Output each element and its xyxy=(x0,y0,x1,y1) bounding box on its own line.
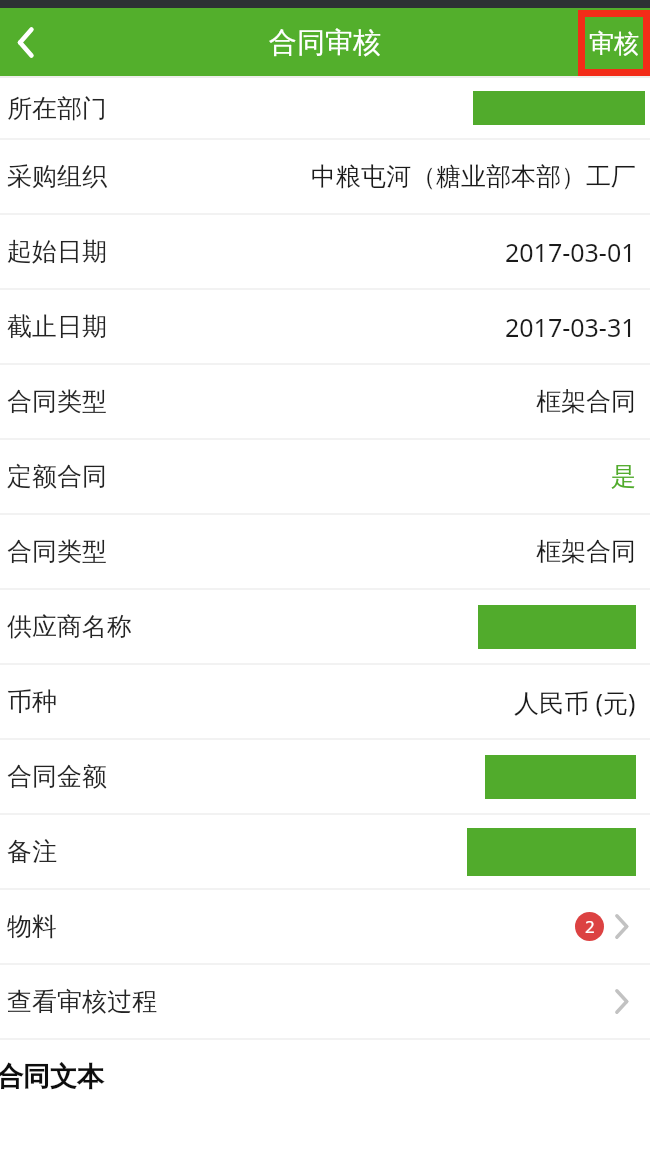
staticText: 人民币 (元) xyxy=(514,685,636,719)
button[interactable]: 定额合同 xyxy=(0,440,650,513)
staticText: 合同类型 xyxy=(7,536,107,567)
staticText: 2017-03-01 xyxy=(505,235,636,269)
staticText: 是 xyxy=(611,461,636,492)
staticText: 截止日期 xyxy=(7,311,107,342)
staticText: 供应商名称 xyxy=(7,611,132,642)
button[interactable]: 物料 xyxy=(0,890,650,963)
button[interactable]: 币种 xyxy=(0,665,650,738)
button[interactable]: 起始日期 xyxy=(0,215,650,288)
staticText: 备注 xyxy=(7,836,57,867)
staticText: 框架合同 xyxy=(536,386,636,417)
staticText: 币种 xyxy=(7,686,57,717)
staticText: 2 xyxy=(585,915,595,938)
staticText: 采购组织 xyxy=(7,161,107,192)
button[interactable]: 采购组织 xyxy=(0,140,650,213)
button[interactable]: 合同金额 xyxy=(0,740,650,813)
staticText: 合同类型 xyxy=(7,386,107,417)
button[interactable]: 合同类型 xyxy=(0,515,650,588)
staticText: 2017-03-31 xyxy=(505,310,636,344)
staticText: 查看审核过程 xyxy=(7,986,157,1017)
button[interactable]: 备注 xyxy=(0,815,650,888)
button[interactable]: 审核 xyxy=(578,10,650,76)
staticText: 物料 xyxy=(7,911,57,942)
button[interactable]: 合同类型 xyxy=(0,365,650,438)
button[interactable]: 供应商名称 xyxy=(0,590,650,663)
button[interactable]: 所在部门 xyxy=(0,78,650,138)
staticText: 框架合同 xyxy=(536,536,636,567)
staticText: 合同审核 xyxy=(269,25,381,60)
staticText: 审核 xyxy=(589,28,639,59)
staticText: 所在部门 xyxy=(7,93,107,124)
button[interactable]: Back xyxy=(0,17,50,67)
staticText: 起始日期 xyxy=(7,236,107,267)
button[interactable]: 查看审核过程 xyxy=(0,965,650,1038)
staticText: 中粮屯河（糖业部本部）工厂 xyxy=(311,161,636,192)
staticText: 合同金额 xyxy=(7,761,107,792)
staticText: 合同文本 xyxy=(0,1060,104,1094)
button[interactable]: 截止日期 xyxy=(0,290,650,363)
staticText: 定额合同 xyxy=(7,461,107,492)
